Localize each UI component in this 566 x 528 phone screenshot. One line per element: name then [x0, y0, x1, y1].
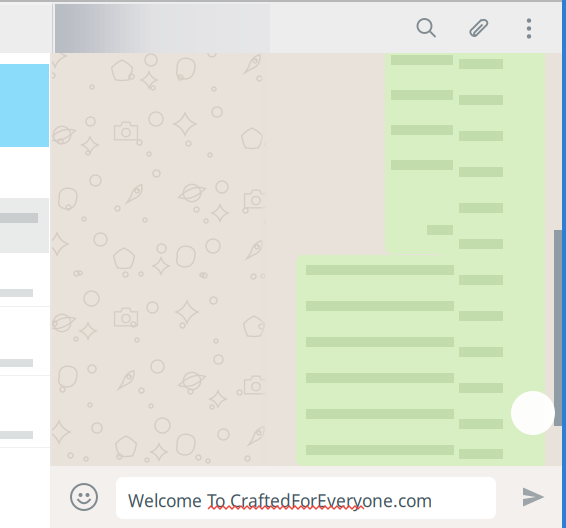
button[interactable]: Search: [405, 4, 449, 53]
button[interactable]: Scroll to bottom: [511, 391, 555, 435]
button[interactable]: Emoji: [59, 466, 109, 528]
button[interactable]: Attach: [457, 4, 501, 53]
button[interactable]: Send: [512, 466, 556, 528]
button[interactable]: Chat: [0, 198, 49, 253]
button[interactable]: Menu: [507, 4, 551, 53]
staticText: Welcome To CraftedForEveryone.com: [128, 489, 432, 512]
